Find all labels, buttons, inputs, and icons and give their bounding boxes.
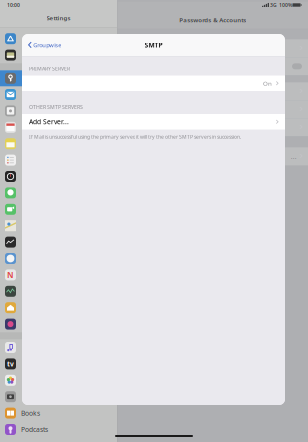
button[interactable]: Groupwise xyxy=(22,34,61,56)
button[interactable]: Passwords & Accounts xyxy=(0,70,117,86)
button[interactable]: Settings item xyxy=(0,217,117,234)
staticText: Settings xyxy=(46,14,70,22)
staticText: 3G 100% xyxy=(269,2,292,8)
button[interactable]: Settings item xyxy=(0,119,117,135)
button[interactable]: Settings item xyxy=(0,234,117,250)
button[interactable]: Settings item xyxy=(0,185,117,201)
button[interactable]: Settings item xyxy=(0,356,117,372)
staticText: tv xyxy=(7,359,14,368)
staticText: Groupwise xyxy=(33,41,61,49)
button[interactable]: Settings item xyxy=(0,283,117,299)
staticText: On xyxy=(263,79,272,87)
button[interactable]: Settings item xyxy=(0,299,117,316)
staticText: SMTP xyxy=(144,41,162,49)
staticText: PRIMARY SERVER xyxy=(29,65,70,72)
staticText: OTHER SMTP SERVERS xyxy=(29,104,83,110)
button[interactable]: Settings item xyxy=(0,168,117,185)
button[interactable]: Settings item xyxy=(0,103,117,119)
button[interactable]: Settings item xyxy=(0,267,117,283)
button[interactable]: Settings item xyxy=(0,372,117,388)
staticText: Podcasts xyxy=(21,425,48,434)
button[interactable]: Settings item xyxy=(0,30,117,47)
button[interactable]: Settings item xyxy=(0,47,117,63)
staticText: If Mail is unsuccessful using the primar… xyxy=(29,133,241,140)
button[interactable]: Settings item xyxy=(0,201,117,217)
button[interactable]: Settings item xyxy=(0,339,117,356)
staticText: Books xyxy=(21,409,40,418)
staticText: N xyxy=(7,270,14,280)
button[interactable]: Settings item xyxy=(0,250,117,267)
staticText: Add Server... xyxy=(29,117,69,126)
staticText: Passwords & Accounts xyxy=(179,16,246,24)
staticText: ... xyxy=(291,152,297,161)
button[interactable]: Settings item xyxy=(0,152,117,168)
button[interactable]: Settings item xyxy=(0,316,117,332)
button[interactable]: On xyxy=(22,75,285,91)
button[interactable]: Settings item xyxy=(0,86,117,103)
button[interactable]: Settings item xyxy=(0,135,117,152)
button[interactable]: Books xyxy=(0,405,117,421)
staticText: 10:00 xyxy=(7,2,20,8)
button[interactable]: Add Server... xyxy=(22,114,285,129)
button[interactable]: Settings item xyxy=(0,388,117,405)
button[interactable]: Podcasts xyxy=(0,421,117,438)
